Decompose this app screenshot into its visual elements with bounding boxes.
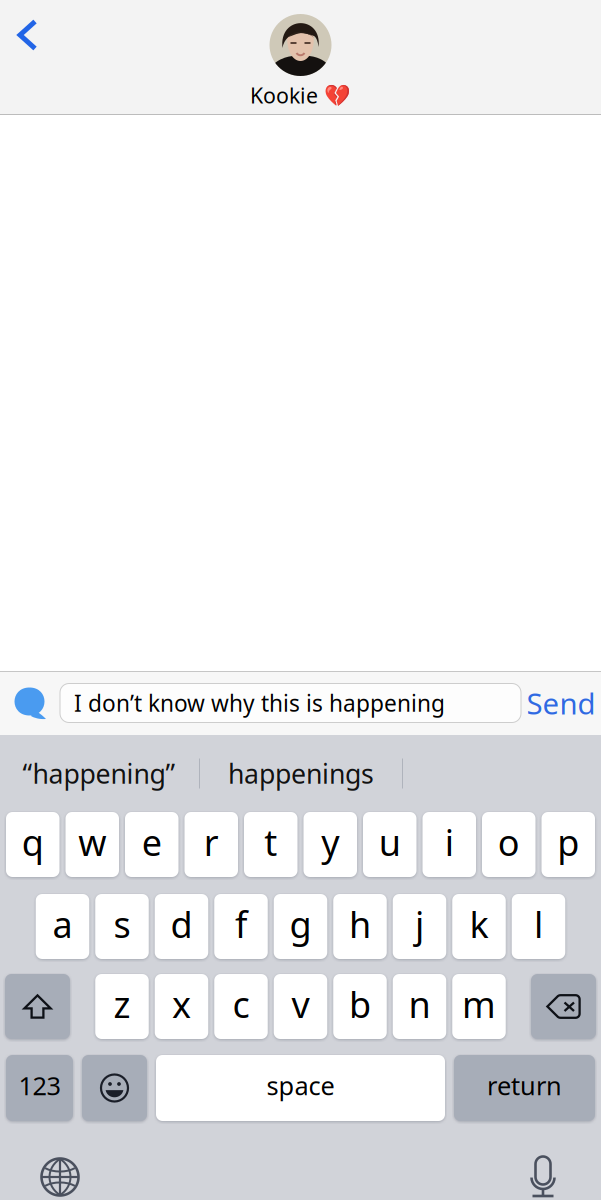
staticText: f — [235, 900, 247, 948]
button[interactable]: f — [214, 894, 268, 959]
staticText: n — [408, 980, 430, 1028]
button[interactable]: s — [95, 894, 149, 959]
button[interactable]: Next keyboard — [29, 1155, 91, 1199]
staticText: o — [498, 818, 520, 866]
staticText: q — [22, 818, 44, 866]
staticText: I don’t know why this is happening — [74, 688, 445, 718]
button[interactable]: 123 — [6, 1055, 73, 1121]
button[interactable]: happenings — [200, 746, 402, 800]
button[interactable]: Delete — [531, 974, 596, 1039]
button[interactable]: l — [512, 894, 565, 959]
staticText: y — [321, 818, 339, 866]
staticText: d — [170, 900, 192, 948]
button[interactable]: Shift — [5, 974, 70, 1039]
button[interactable]: n — [393, 974, 446, 1039]
staticText: e — [142, 818, 162, 866]
button[interactable]: return — [454, 1055, 595, 1121]
button[interactable]: d — [155, 894, 208, 959]
staticText: k — [469, 900, 488, 948]
button[interactable]: w — [65, 812, 119, 877]
button[interactable]: “happening” — [0, 746, 199, 800]
staticText: w — [78, 818, 106, 866]
button[interactable]: y — [303, 812, 357, 877]
button[interactable]: t — [244, 812, 297, 877]
button[interactable]: k — [452, 894, 506, 959]
staticText: i — [445, 818, 454, 866]
staticText: a — [52, 900, 72, 948]
staticText: m — [462, 980, 496, 1028]
staticText: s — [113, 900, 130, 948]
staticText: 123 — [18, 1069, 60, 1102]
button[interactable]: e — [125, 812, 178, 877]
button[interactable]: h — [333, 894, 387, 959]
staticText: l — [534, 900, 543, 948]
button[interactable]: r — [184, 812, 238, 877]
button[interactable]: Dictation — [512, 1155, 574, 1199]
staticText: c — [232, 980, 249, 1028]
button[interactable]: b — [333, 974, 387, 1039]
staticText: r — [204, 818, 219, 866]
staticText: g — [289, 900, 311, 948]
staticText: x — [172, 980, 191, 1028]
button[interactable]: g — [274, 894, 327, 959]
button[interactable]: i — [422, 812, 476, 877]
button[interactable]: o — [482, 812, 535, 877]
button[interactable]: Emoji — [82, 1055, 147, 1121]
button[interactable]: a — [36, 894, 89, 959]
button[interactable]: m — [452, 974, 506, 1039]
button[interactable]: space — [156, 1055, 445, 1121]
staticText: t — [264, 818, 277, 866]
button[interactable]: c — [214, 974, 268, 1039]
button[interactable]: Apps — [0, 671, 60, 735]
staticText: j — [415, 900, 424, 948]
button[interactable]: x — [155, 974, 208, 1039]
staticText: Send — [526, 683, 595, 722]
button[interactable]: Back — [0, 7, 56, 63]
staticText: u — [379, 818, 401, 866]
staticText: return — [487, 1069, 562, 1102]
staticText: p — [557, 818, 579, 866]
staticText: “happening” — [22, 756, 175, 791]
staticText: Kookie 💔 — [250, 81, 351, 109]
staticText: happenings — [228, 756, 374, 791]
button[interactable]: u — [363, 812, 416, 877]
button[interactable]: p — [541, 812, 595, 877]
button[interactable]: q — [6, 812, 59, 877]
button[interactable]: z — [95, 974, 149, 1039]
staticText: b — [349, 980, 371, 1028]
button[interactable]: Send — [521, 671, 601, 735]
staticText: h — [349, 900, 371, 948]
button[interactable]: j — [393, 894, 446, 959]
staticText: z — [113, 980, 130, 1028]
staticText: v — [291, 980, 309, 1028]
button[interactable]: v — [274, 974, 327, 1039]
button[interactable]: Kookie 💔 — [250, 0, 351, 109]
staticText: space — [266, 1069, 334, 1102]
